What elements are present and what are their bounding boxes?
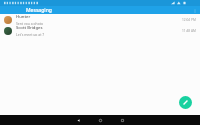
button[interactable]: Back	[67, 115, 89, 125]
staticText: 11:48 AM	[182, 29, 196, 33]
button[interactable]: More options	[191, 7, 198, 14]
button[interactable]: Hunter	[0, 14, 200, 25]
button[interactable]: Recent apps	[111, 115, 133, 125]
staticText: Hunter	[16, 14, 31, 20]
button[interactable]: Scott Bridges	[0, 25, 200, 36]
button[interactable]: Home	[89, 115, 111, 125]
button[interactable]: Compose new message	[179, 96, 192, 109]
staticText: Scott Bridges	[16, 25, 43, 31]
staticText: Let's meet up at 7	[16, 32, 45, 36]
staticText: 12:04 PM	[182, 18, 196, 22]
staticText: Messaging	[26, 7, 52, 14]
staticText: Sent you a photo	[16, 21, 44, 25]
